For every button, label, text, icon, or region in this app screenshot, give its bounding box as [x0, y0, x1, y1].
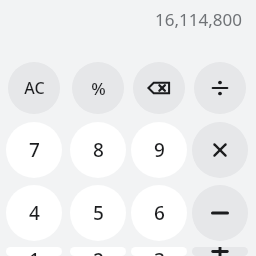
staticText: 1: [29, 247, 40, 256]
button[interactable]: %: [72, 62, 124, 114]
button[interactable]: Divide: [194, 62, 246, 114]
staticText: AC: [24, 77, 45, 99]
staticText: 6: [154, 200, 165, 226]
button[interactable]: Backspace: [133, 62, 185, 114]
button[interactable]: 7: [6, 122, 62, 178]
button[interactable]: Plus: [192, 247, 248, 256]
button[interactable]: 9: [131, 122, 187, 178]
staticText: 16,114,800: [155, 8, 242, 31]
button[interactable]: 5: [70, 185, 126, 241]
button[interactable]: 6: [131, 185, 187, 241]
staticText: 2: [93, 247, 104, 256]
button[interactable]: 1: [6, 247, 62, 256]
button[interactable]: Minus: [192, 185, 248, 241]
button[interactable]: 4: [6, 185, 62, 241]
staticText: %: [91, 77, 106, 100]
button[interactable]: 3: [131, 247, 187, 256]
staticText: 4: [29, 200, 40, 226]
button[interactable]: 8: [70, 122, 126, 178]
button[interactable]: Multiply: [192, 122, 248, 178]
staticText: 5: [93, 200, 104, 226]
button[interactable]: 2: [70, 247, 126, 256]
staticText: 3: [154, 247, 165, 256]
staticText: 9: [154, 137, 165, 163]
staticText: 8: [93, 137, 104, 163]
staticText: 7: [29, 137, 40, 163]
button[interactable]: AC: [8, 62, 60, 114]
